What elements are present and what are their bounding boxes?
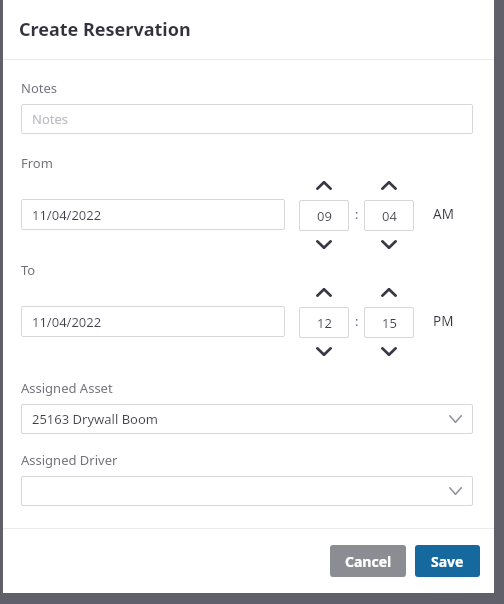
staticText: Notes	[32, 110, 68, 128]
button[interactable]: Decrease Minute	[374, 237, 404, 252]
staticText: Cancel	[345, 552, 392, 571]
staticText: AM	[433, 205, 454, 223]
button[interactable]: Increase Minute	[374, 283, 404, 301]
staticText: :	[355, 205, 359, 223]
button[interactable]: 11/04/2022	[21, 306, 285, 337]
button[interactable]: Decrease Hour	[309, 237, 339, 252]
staticText: 04	[382, 207, 397, 225]
button[interactable]: 15	[364, 307, 414, 338]
button[interactable]: Increase Hour	[309, 283, 339, 301]
button[interactable]: Increase Minute	[374, 176, 404, 194]
button[interactable]: 04	[364, 200, 414, 231]
button[interactable]: Increase Hour	[309, 176, 339, 194]
staticText: 09	[317, 207, 332, 225]
staticText: From	[21, 154, 53, 172]
button[interactable]: Open dropdown	[21, 476, 473, 506]
button[interactable]: Save	[415, 545, 480, 577]
staticText: Create Reservation	[19, 17, 191, 42]
staticText: Assigned Driver	[21, 451, 118, 469]
staticText: 11/04/2022	[32, 313, 102, 331]
staticText: To	[21, 261, 36, 279]
button[interactable]: 11/04/2022	[21, 199, 285, 230]
staticText: Notes	[21, 79, 57, 97]
button[interactable]: 09	[299, 200, 349, 231]
staticText: Save	[431, 552, 464, 571]
button[interactable]: Decrease Minute	[374, 344, 404, 359]
button[interactable]: Decrease Hour	[309, 344, 339, 359]
staticText: PM	[433, 312, 454, 330]
staticText: Assigned Asset	[21, 379, 113, 397]
button[interactable]: Open dropdown	[21, 404, 473, 434]
staticText: :	[355, 312, 359, 330]
staticText: 11/04/2022	[32, 206, 102, 224]
staticText: 25163 Drywall Boom	[32, 410, 158, 428]
staticText: 15	[382, 314, 397, 332]
button[interactable]: Cancel	[330, 545, 406, 577]
staticText: 12	[317, 314, 332, 332]
button[interactable]: 12	[299, 307, 349, 338]
button[interactable]: Notes	[21, 104, 473, 134]
